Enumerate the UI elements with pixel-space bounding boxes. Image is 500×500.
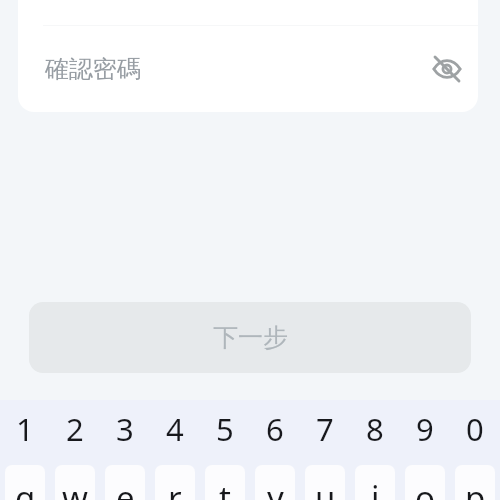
button[interactable]: i: [355, 465, 395, 500]
button[interactable]: 2: [50, 396, 100, 461]
staticText: q: [15, 475, 36, 500]
button[interactable]: w: [55, 465, 95, 500]
button[interactable]: 6: [250, 396, 300, 461]
button[interactable]: t: [205, 465, 245, 500]
staticText: 4: [166, 408, 184, 450]
staticText: w: [62, 475, 88, 500]
button[interactable]: 8: [350, 396, 400, 461]
button[interactable]: Show password: [425, 47, 469, 91]
button[interactable]: p: [455, 465, 495, 500]
button[interactable]: 9: [400, 396, 450, 461]
button[interactable]: 1: [0, 396, 50, 461]
button[interactable]: 5: [200, 396, 250, 461]
button[interactable]: 0: [450, 396, 500, 461]
staticText: 確認密碼: [45, 54, 141, 84]
button[interactable]: 4: [150, 396, 200, 461]
button[interactable]: 7: [300, 396, 350, 461]
button[interactable]: 3: [100, 396, 150, 461]
staticText: 7: [316, 408, 334, 450]
staticText: 下一步: [213, 322, 288, 353]
button[interactable]: e: [105, 465, 145, 500]
staticText: 8: [366, 408, 384, 450]
button[interactable]: y: [255, 465, 295, 500]
button[interactable]: r: [155, 465, 195, 500]
staticText: r: [168, 475, 182, 500]
staticText: y: [267, 475, 284, 500]
staticText: 1: [16, 408, 34, 450]
staticText: 6: [266, 408, 284, 450]
staticText: 5: [216, 408, 234, 450]
staticText: 3: [116, 408, 134, 450]
button[interactable]: 下一步: [29, 302, 471, 373]
staticText: o: [415, 475, 435, 500]
staticText: 9: [416, 408, 434, 450]
button[interactable]: 確認密碼: [18, 26, 478, 112]
staticText: p: [465, 475, 486, 500]
button[interactable]: o: [405, 465, 445, 500]
button[interactable]: u: [305, 465, 345, 500]
staticText: i: [371, 475, 380, 500]
button[interactable]: q: [5, 465, 45, 500]
staticText: u: [315, 475, 336, 500]
staticText: t: [219, 475, 231, 500]
staticText: e: [116, 475, 135, 500]
staticText: 0: [466, 408, 484, 450]
staticText: 2: [66, 408, 84, 450]
